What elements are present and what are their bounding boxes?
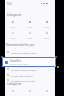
staticText: Label (44, 37, 50, 40)
button[interactable]: Browsing history tips (7, 78, 55, 82)
staticText: Label (10, 37, 16, 40)
button[interactable]: Label (38, 21, 55, 29)
button[interactable] (5, 90, 21, 92)
button[interactable]: Deadline (2, 57, 56, 67)
staticText: Label (27, 37, 33, 40)
staticText: 9:41 (7, 2, 13, 6)
staticText: Weekly digest of news (11, 68, 36, 71)
button[interactable]: Weekly digest of news (7, 67, 55, 71)
button[interactable]: Label (5, 32, 21, 40)
staticText: Recommended for you (6, 43, 35, 47)
button[interactable]: Label (38, 32, 55, 40)
staticText: Morning routine check (11, 51, 37, 54)
button[interactable] (21, 90, 38, 92)
staticText: Deadline (10, 59, 22, 63)
staticText: Label (27, 26, 33, 29)
staticText: Categories (7, 13, 22, 17)
staticText: Travel alerts nearby (11, 74, 34, 77)
button[interactable]: Label (21, 32, 38, 40)
button[interactable]: Travel alerts nearby (7, 73, 55, 77)
staticText: Browsing history tips (11, 79, 35, 82)
button[interactable]: Label (5, 21, 21, 29)
button[interactable] (38, 90, 55, 92)
button[interactable]: Label (21, 21, 38, 29)
staticText: Label (10, 26, 16, 29)
staticText: Label (44, 26, 50, 29)
staticText: Categories (7, 82, 22, 86)
staticText: for an earlier flight (10, 63, 29, 66)
button[interactable]: Morning routine check (7, 50, 55, 54)
